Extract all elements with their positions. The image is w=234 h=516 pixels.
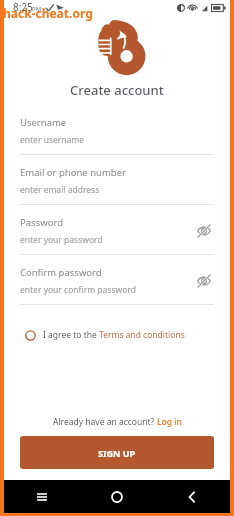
staticText: Create account bbox=[70, 81, 164, 99]
button[interactable]: Username bbox=[20, 116, 214, 146]
button[interactable]: Email or phone number bbox=[20, 166, 214, 196]
button[interactable]: Show password bbox=[195, 222, 213, 240]
staticText: enter your password bbox=[20, 234, 103, 246]
staticText: Password bbox=[20, 216, 63, 229]
staticText: enter your confirm password bbox=[20, 284, 136, 296]
button[interactable]: Log in bbox=[157, 416, 182, 428]
staticText: hack-cheat.org bbox=[3, 5, 93, 21]
button[interactable]: Recents bbox=[26, 481, 58, 513]
button[interactable]: SIGN UP bbox=[20, 436, 214, 469]
button[interactable]: Confirm password bbox=[20, 266, 214, 296]
staticText: Log in bbox=[157, 416, 182, 428]
staticText: 8:25 bbox=[13, 0, 33, 14]
button[interactable]: Back bbox=[176, 481, 208, 513]
staticText: Email or phone number bbox=[20, 166, 126, 179]
staticText: enter email address bbox=[20, 184, 100, 196]
staticText: SIGN UP bbox=[98, 447, 136, 459]
button[interactable]: I agree to the bbox=[25, 329, 214, 341]
button[interactable]: Show password bbox=[195, 272, 213, 290]
staticText: Terms and conditions bbox=[99, 329, 185, 341]
staticText: enter username bbox=[20, 134, 85, 146]
staticText: Confirm password bbox=[20, 266, 102, 279]
staticText: Username bbox=[20, 116, 67, 129]
staticText: PM bbox=[32, 5, 42, 13]
staticText: I agree to the bbox=[43, 329, 99, 341]
staticText: Already have an account? bbox=[53, 416, 157, 428]
button[interactable]: Password bbox=[20, 216, 214, 246]
button[interactable]: Home bbox=[101, 481, 133, 513]
